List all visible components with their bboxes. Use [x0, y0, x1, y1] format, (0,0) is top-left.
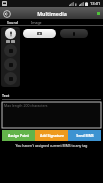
- staticText: Max length 200 characters: [4, 103, 48, 108]
- button[interactable]: Playback: [4, 44, 17, 57]
- button[interactable]: Playback: [4, 58, 17, 71]
- button[interactable]: Up: [1, 8, 12, 19]
- staticText: Text: [2, 93, 10, 98]
- button[interactable]: Sound: [0, 19, 24, 25]
- staticText: Send MMS: [76, 133, 94, 138]
- staticText: Image: [31, 20, 42, 25]
- staticText: Multimedia: [37, 10, 67, 17]
- staticText: Sound: [7, 20, 18, 25]
- button[interactable]: Send MMS: [68, 130, 101, 141]
- staticText: 13:01: [90, 1, 101, 7]
- button[interactable]: Take photo: [60, 29, 88, 38]
- staticText: You haven't assigned current MMS to any …: [0, 143, 103, 148]
- button[interactable]: Max length 200 characters: [2, 102, 101, 128]
- button[interactable]: Playback: [4, 72, 17, 85]
- button[interactable]: Image: [24, 19, 48, 25]
- staticText: Add Signature: [40, 133, 64, 138]
- button[interactable]: Pick image: [23, 29, 56, 38]
- button[interactable]: Assign Point: [2, 130, 35, 141]
- button[interactable]: Add Signature: [35, 130, 68, 141]
- button[interactable]: Audio control: [6, 40, 10, 43]
- button[interactable]: Audio control: [11, 40, 15, 43]
- button[interactable]: Record audio: [5, 28, 16, 39]
- staticText: Assign Point: [8, 133, 29, 138]
